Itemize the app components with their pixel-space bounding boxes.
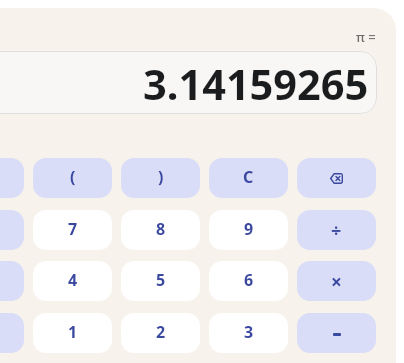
staticText: ÷ bbox=[331, 218, 342, 243]
staticText: 6 bbox=[244, 269, 254, 291]
button[interactable] bbox=[0, 158, 24, 198]
button[interactable]: 1 bbox=[33, 313, 112, 353]
button[interactable]: 3 bbox=[209, 313, 288, 353]
staticText: ( bbox=[70, 166, 76, 188]
button[interactable]: ( bbox=[33, 158, 112, 198]
button[interactable]: 6 bbox=[209, 261, 288, 301]
staticText: 1 bbox=[68, 321, 78, 343]
button[interactable]: C bbox=[209, 158, 288, 198]
button[interactable]: ÷ bbox=[297, 210, 376, 250]
button[interactable]: 2 bbox=[121, 313, 200, 353]
button[interactable]: 5 bbox=[121, 261, 200, 301]
button[interactable]: 7 bbox=[33, 210, 112, 250]
button[interactable] bbox=[0, 261, 24, 301]
staticText: 8 bbox=[156, 218, 166, 240]
staticText: 9 bbox=[244, 218, 254, 240]
staticText: ) bbox=[158, 166, 164, 188]
staticText: 5 bbox=[156, 269, 166, 291]
button[interactable] bbox=[0, 313, 24, 353]
staticText: C bbox=[243, 166, 254, 188]
staticText: 7 bbox=[68, 218, 78, 240]
button[interactable]: 8 bbox=[121, 210, 200, 250]
staticText: 3 bbox=[244, 321, 254, 343]
button[interactable] bbox=[297, 313, 376, 353]
staticText: π = bbox=[356, 28, 376, 46]
button[interactable] bbox=[297, 158, 376, 198]
button[interactable]: × bbox=[297, 261, 376, 301]
staticText: 2 bbox=[156, 321, 166, 343]
staticText: × bbox=[331, 269, 342, 295]
staticText: 3.14159265 bbox=[143, 56, 369, 113]
button[interactable]: ) bbox=[121, 158, 200, 198]
button[interactable]: 4 bbox=[33, 261, 112, 301]
button[interactable] bbox=[0, 210, 24, 250]
staticText: 4 bbox=[68, 269, 78, 291]
button[interactable]: 9 bbox=[209, 210, 288, 250]
